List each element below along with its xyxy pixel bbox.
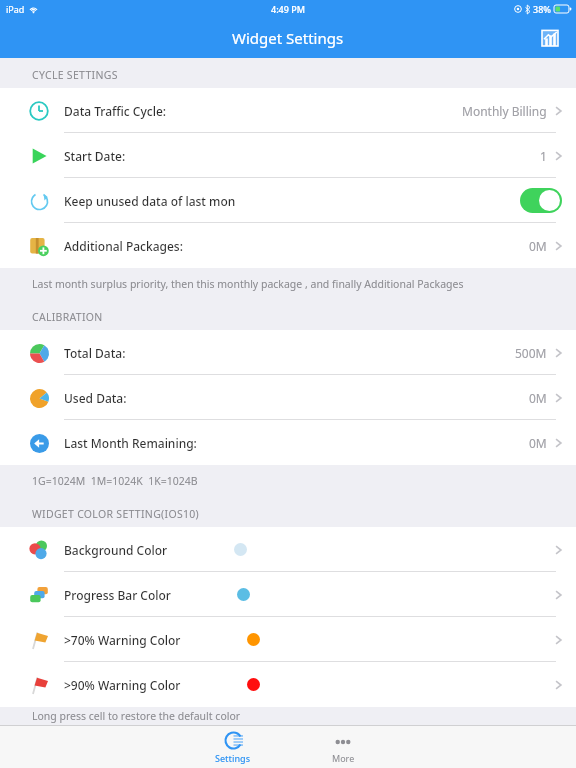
staticText: Used Data: [64,390,127,406]
button[interactable]: Keep unused data of last mon [0,178,576,223]
button[interactable]: Progress Bar Color [0,572,576,617]
button[interactable]: Background Color [0,527,576,572]
staticText: CYCLE SETTINGS [32,68,118,82]
staticText: 0M [529,390,547,406]
button[interactable]: Keep unused data toggle [520,188,562,213]
staticText: 1G=1024M 1M=1024K 1K=1024B [32,474,198,488]
staticText: More [332,752,355,764]
staticText: Additional Packages: [64,238,183,254]
staticText: Long press cell to restore the default c… [32,709,241,723]
staticText: Total Data: [64,345,126,361]
staticText: Settings [215,752,251,764]
staticText: >90% Warning Color [64,677,181,693]
staticText: iPad [6,3,25,15]
staticText: 4:49 PM [271,3,305,15]
staticText: Start Date: [64,148,126,164]
button[interactable]: Last Month Remaining: [0,420,576,465]
staticText: 38% [533,3,551,15]
button[interactable]: Total Data: [0,330,576,375]
staticText: 1 [540,148,547,164]
button[interactable]: Statistics [532,20,568,56]
staticText: CALIBRATION [32,310,103,324]
staticText: Last Month Remaining: [64,435,197,451]
staticText: 0M [529,238,547,254]
staticText: Data Traffic Cycle: [64,103,167,119]
button[interactable]: >90% Warning Color [0,662,576,707]
button[interactable]: Data Traffic Cycle: [0,88,576,133]
staticText: 500M [515,345,547,361]
staticText: >70% Warning Color [64,632,181,648]
staticText: WIDGET COLOR SETTING(IOS10) [32,507,200,521]
button[interactable]: Start Date: [0,133,576,178]
button[interactable]: Additional Packages: [0,223,576,268]
button[interactable]: Settings [178,726,288,768]
button[interactable]: More [288,726,398,768]
staticText: Keep unused data of last mon [64,193,236,209]
button[interactable]: >70% Warning Color [0,617,576,662]
staticText: Last month surplus priority, then this m… [32,277,464,291]
staticText: Progress Bar Color [64,587,171,603]
staticText: Widget Settings [232,28,344,48]
button[interactable]: Used Data: [0,375,576,420]
staticText: Monthly Billing [462,103,547,119]
staticText: Background Color [64,542,168,558]
staticText: 0M [529,435,547,451]
